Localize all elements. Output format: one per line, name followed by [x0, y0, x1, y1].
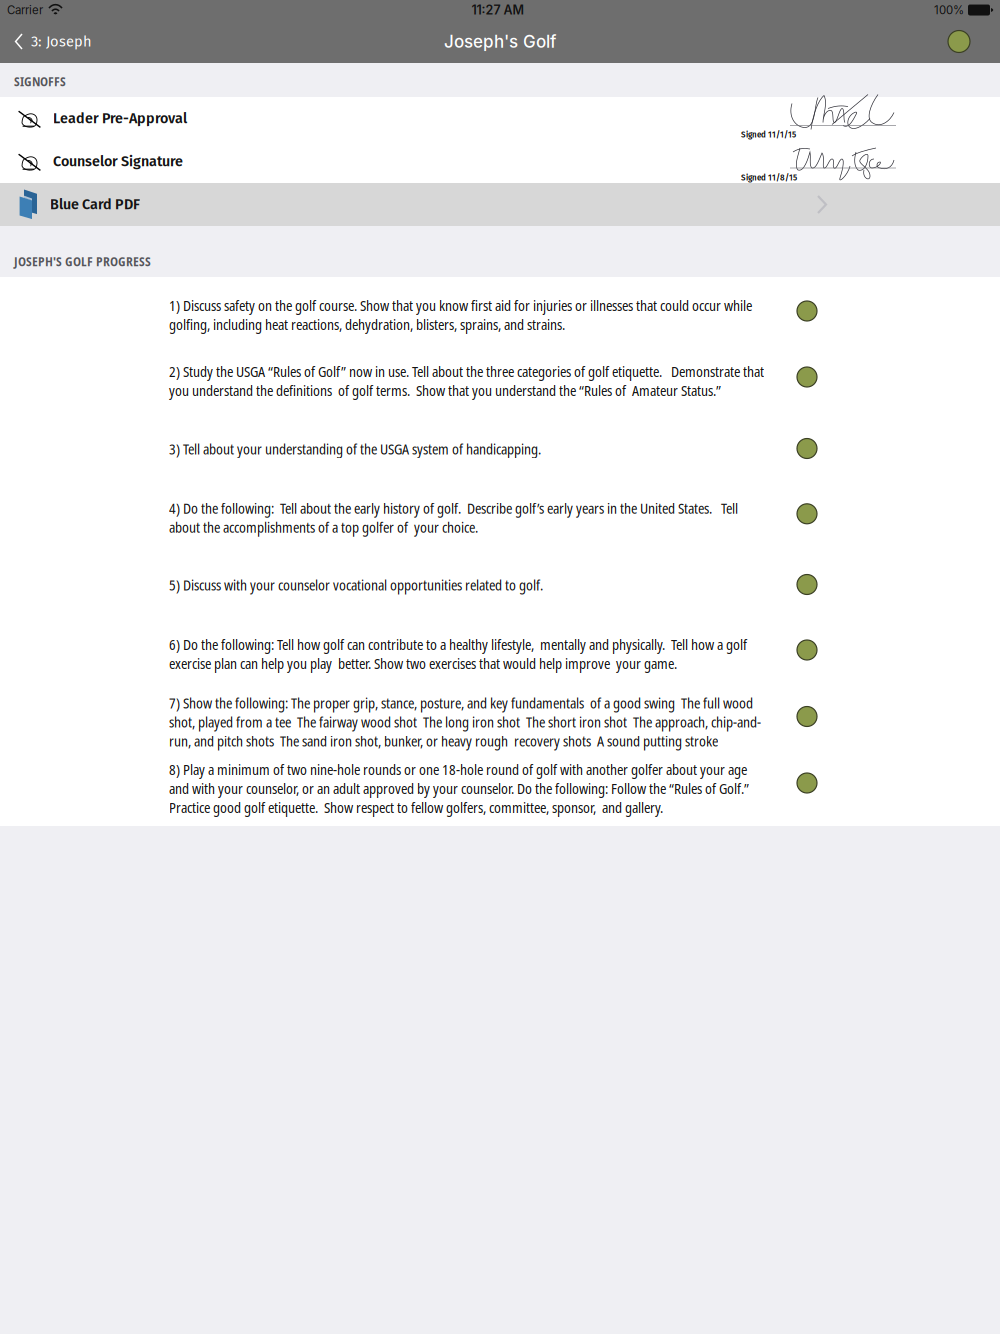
- staticText: Carrier: [7, 3, 43, 17]
- staticText: 11:27 AM: [471, 2, 524, 17]
- staticText: 5) Discuss with your counselor vocationa…: [169, 575, 543, 595]
- button[interactable]: Counselor Signature: [0, 140, 1000, 183]
- staticText: Leader Pre-Approval: [53, 110, 187, 127]
- staticText: JOSEPH'S GOLF PROGRESS: [14, 253, 151, 270]
- staticText: Blue Card PDF: [50, 196, 140, 213]
- button[interactable]: Leader Pre-Approval: [0, 97, 1000, 140]
- staticText: SIGNOFFS: [14, 73, 66, 90]
- staticText: Signed 11/8/15: [741, 173, 797, 183]
- staticText: 8) Play a minimum of two nine-hole round…: [169, 760, 752, 817]
- button[interactable]: Blue Card PDF: [0, 183, 1000, 226]
- staticText: 3: Joseph: [31, 33, 92, 50]
- staticText: 3) Tell about your understanding of the …: [169, 439, 541, 459]
- staticText: Counselor Signature: [53, 153, 183, 170]
- staticText: Signed 11/1/15: [741, 130, 796, 140]
- staticText: 1) Discuss safety on the golf course. Sh…: [169, 296, 752, 334]
- button[interactable]: 3: Joseph: [0, 20, 102, 63]
- staticText: 2) Study the USGA “Rules of Golf” now in…: [169, 362, 764, 400]
- staticText: 7) Show the following: The proper grip, …: [169, 693, 761, 751]
- staticText: Joseph's Golf: [444, 31, 556, 52]
- staticText: 6) Do the following: Tell how golf can c…: [169, 635, 747, 673]
- staticText: 100%: [934, 3, 964, 17]
- staticText: 4) Do the following: Tell about the earl…: [169, 499, 738, 537]
- button[interactable]: Requirement status: [932, 20, 1000, 63]
